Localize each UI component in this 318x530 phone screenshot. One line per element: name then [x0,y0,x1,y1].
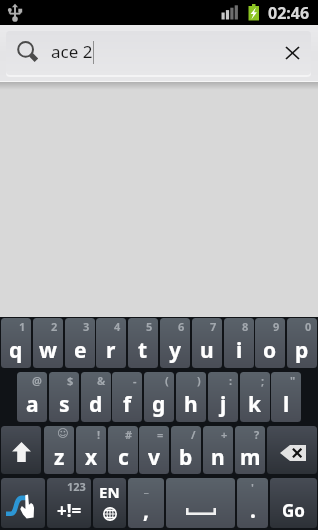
staticText: 0 [305,319,312,334]
staticText: 9 [273,319,280,334]
button[interactable]: 6 [160,318,190,368]
staticText: h [184,390,198,419]
button[interactable]: + [203,426,233,474]
button[interactable]: / [171,426,201,474]
button[interactable]: globe [93,478,126,528]
staticText: Go [282,499,305,522]
button[interactable]: shift [1,426,41,474]
staticText: j [220,390,227,419]
staticText: u [200,336,214,365]
staticText: 02:46 [268,2,310,24]
button[interactable]: 4 [96,318,126,368]
button[interactable]: 7 [192,318,222,368]
staticText: ) [197,373,201,388]
staticText: w [39,336,57,365]
staticText: 7 [210,319,217,334]
staticText: 123 [67,479,86,494]
staticText: g [152,390,166,419]
staticText: o [263,336,277,365]
staticText: b [179,443,193,472]
button[interactable]: 3 [65,318,95,368]
staticText: : [229,373,233,388]
staticText: p [295,336,309,365]
staticText: 3 [83,319,90,334]
staticText: @ [32,373,42,388]
button[interactable]: del [267,426,317,474]
staticText: ? [254,427,260,442]
staticText: _ [144,480,149,495]
button[interactable]: ( [144,372,174,422]
button[interactable]: & [81,372,111,422]
staticText: 6 [178,319,185,334]
staticText: s [59,390,70,419]
staticText: v [148,443,160,472]
button[interactable]: # [108,426,138,474]
staticText: y [169,336,181,365]
staticText: r [106,336,116,365]
staticText: i [236,336,243,365]
other: USB connected [7,3,23,22]
staticText: EN [99,482,120,502]
button[interactable]: ! [76,426,106,474]
button[interactable]: $ [49,372,79,422]
staticText: ace 2 [51,40,93,63]
staticText: / [191,427,196,442]
staticText: # [125,427,133,442]
staticText: f [123,390,132,419]
staticText: 4 [114,319,121,334]
button[interactable]: 5 [128,318,158,368]
staticText: ☺ [57,427,69,440]
staticText: - [133,373,137,388]
staticText: a [26,390,39,419]
button[interactable]: = [139,426,169,474]
staticText: +!= [57,499,82,522]
button[interactable]: Go [270,478,317,528]
button[interactable]: 2 [33,318,63,368]
staticText: ' [251,480,254,495]
staticText: d [89,390,103,419]
staticText: q [9,336,23,365]
staticText: . [250,496,256,525]
staticText: t [138,336,148,365]
button[interactable]: @ [17,372,47,422]
button[interactable]: 123 [47,478,91,528]
button[interactable]: 1 [1,318,31,368]
staticText: n [211,443,225,472]
staticText: " [290,373,296,388]
staticText: 5 [146,319,153,334]
button[interactable]: ' [237,478,268,528]
button[interactable]: swipe [1,478,45,528]
button[interactable]: Clear search [273,31,311,75]
staticText: , [143,496,149,525]
staticText: k [248,390,262,419]
staticText: 2 [51,319,58,334]
button[interactable]: ) [176,372,206,422]
staticText: 1 [19,319,26,334]
button[interactable]: " [271,372,301,422]
staticText: x [85,443,98,472]
staticText: z [54,443,65,472]
button[interactable]: : [208,372,238,422]
staticText: + [221,427,228,442]
button[interactable]: ☺ [44,426,74,474]
button[interactable]: - [112,372,142,422]
button[interactable]: ? [235,426,265,474]
button[interactable]: space [166,478,235,528]
staticText: e [74,336,87,365]
staticText: = [157,427,164,442]
button[interactable]: ; [240,372,270,422]
staticText: ( [165,373,169,388]
button[interactable]: 9 [255,318,285,368]
staticText: 8 [242,319,249,334]
staticText: $ [67,373,74,388]
button[interactable]: ace 2 [6,31,311,75]
button[interactable]: 8 [224,318,254,368]
staticText: ! [97,427,101,442]
staticText: l [283,390,290,419]
staticText: ; [261,373,265,388]
staticText: & [97,373,106,388]
button[interactable]: 0 [287,318,317,368]
button[interactable]: _ [128,478,164,528]
staticText: m [240,443,261,472]
staticText: c [118,443,129,472]
